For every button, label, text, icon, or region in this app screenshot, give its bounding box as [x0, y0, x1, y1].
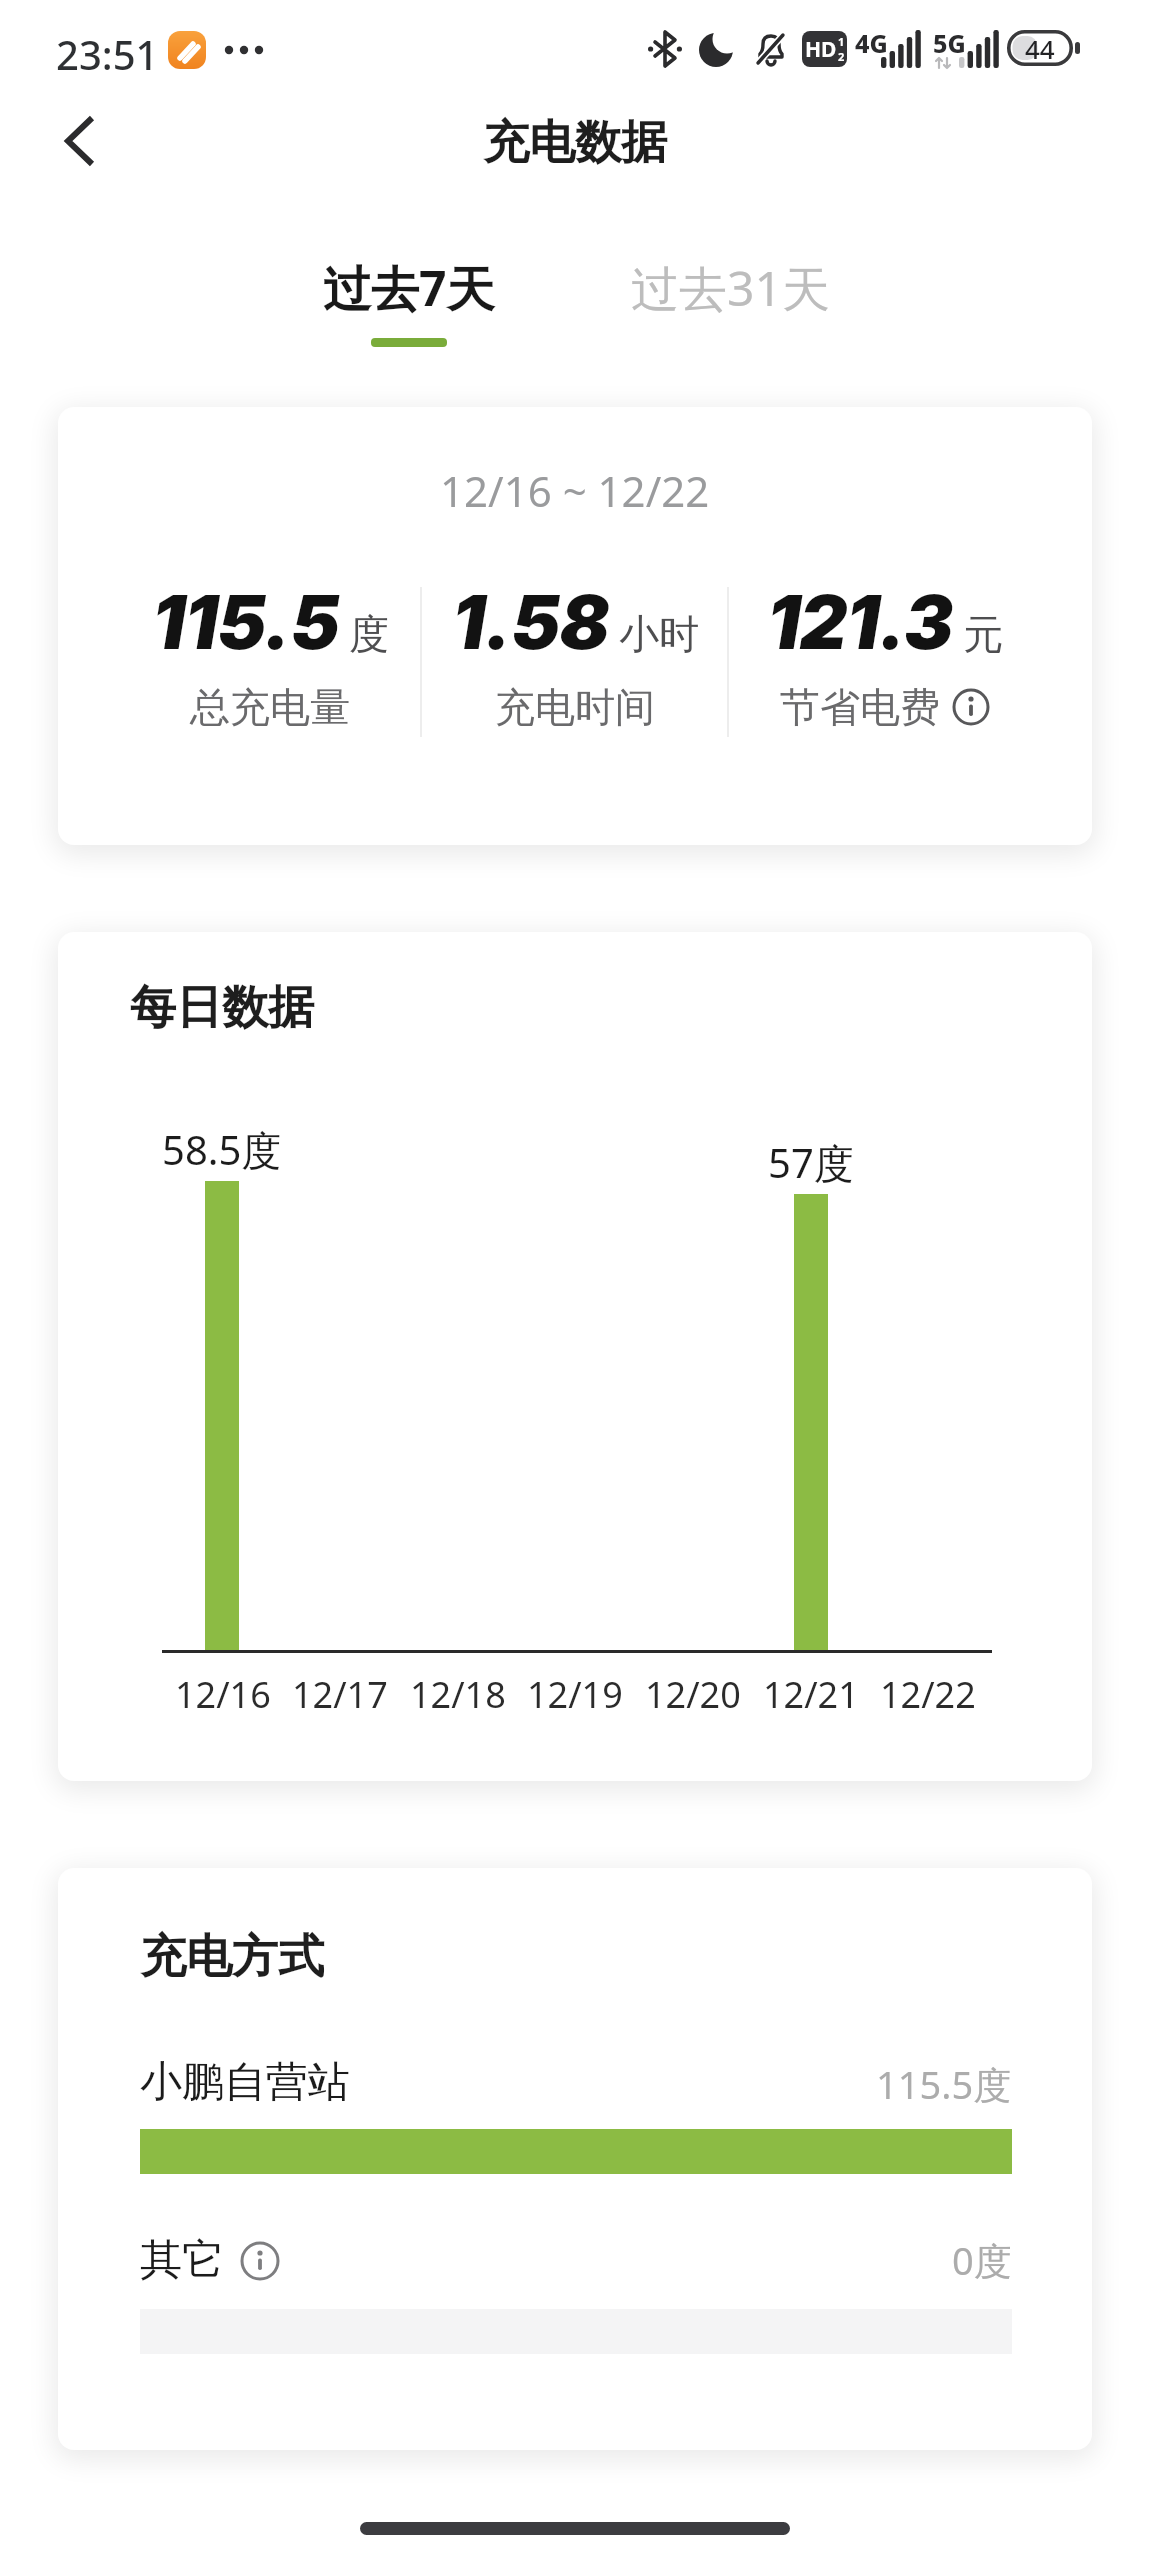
staticText: 12/17: [292, 1670, 388, 1719]
staticText: 其它: [140, 2234, 224, 2287]
staticText: 过去7天: [323, 255, 495, 321]
staticText: 57度: [768, 1135, 854, 1190]
staticText: 58.5度: [162, 1122, 282, 1177]
button[interactable]: 过去31天: [620, 250, 840, 326]
staticText: 元: [963, 609, 1003, 659]
staticText: 12/22: [880, 1670, 976, 1719]
staticText: HD: [805, 35, 837, 64]
staticText: 4G: [855, 26, 888, 60]
button[interactable]: [952, 688, 990, 726]
staticText: 12/16 ~ 12/22: [440, 462, 710, 518]
staticText: 过去31天: [631, 255, 830, 321]
staticText: 每日数据: [130, 979, 314, 1037]
staticText: 12/21: [763, 1670, 859, 1719]
staticText: 12/16: [175, 1670, 271, 1719]
staticText: 小时: [619, 609, 699, 659]
staticText: 1: [838, 34, 845, 49]
staticText: 小鹏自营站: [140, 2056, 350, 2109]
button[interactable]: 小鹏自营站: [140, 2054, 350, 2110]
staticText: 12/18: [410, 1670, 506, 1719]
button[interactable]: 过去7天: [299, 250, 519, 326]
button[interactable]: [50, 110, 110, 172]
staticText: 12/20: [645, 1670, 741, 1719]
staticText: 1.58: [452, 577, 609, 667]
staticText: 充电方式: [140, 1928, 324, 1986]
staticText: 44: [1025, 31, 1055, 66]
button[interactable]: [240, 2241, 280, 2281]
staticText: 度: [349, 609, 389, 659]
button[interactable]: 其它: [140, 2232, 280, 2288]
staticText: 115.5度: [876, 2058, 1012, 2110]
staticText: 0度: [952, 2234, 1012, 2286]
staticText: 节省电费: [780, 682, 940, 732]
staticText: 12/19: [527, 1670, 623, 1719]
staticText: 2: [838, 49, 845, 64]
staticText: 23:51: [56, 27, 159, 73]
staticText: 总充电量: [190, 682, 350, 732]
staticText: 121.3: [767, 577, 953, 667]
staticText: 115.5: [152, 577, 339, 667]
staticText: 充电数据: [483, 114, 667, 172]
staticText: 充电时间: [495, 682, 655, 732]
staticText: 5G: [933, 26, 966, 60]
